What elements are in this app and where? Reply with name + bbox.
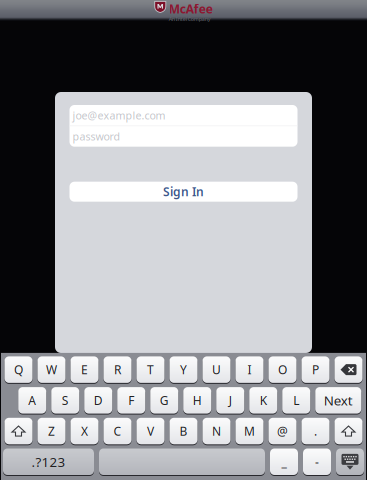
button[interactable]: . — [301, 418, 329, 444]
button[interactable]: T — [136, 356, 164, 383]
staticText: V — [147, 423, 154, 439]
button[interactable]: .?123 — [3, 448, 94, 475]
button[interactable]: Shift — [4, 418, 32, 444]
staticText: S — [62, 392, 69, 408]
staticText: An Intel Company — [169, 15, 211, 22]
button[interactable]: Z — [37, 418, 65, 444]
button[interactable]: I — [235, 356, 263, 383]
staticText: R — [114, 362, 121, 378]
button[interactable]: W — [37, 356, 65, 383]
button[interactable]: N — [202, 418, 230, 444]
staticText: L — [293, 392, 299, 408]
button[interactable]: X — [70, 418, 98, 444]
staticText: N — [212, 423, 221, 439]
button[interactable]: K — [249, 387, 277, 414]
button[interactable]: V — [136, 418, 164, 444]
button[interactable]: Q — [4, 356, 32, 383]
button[interactable]: L — [282, 387, 310, 414]
staticText: K — [260, 392, 267, 408]
button[interactable]: - — [303, 448, 331, 475]
button[interactable]: J — [216, 387, 244, 414]
button[interactable]: C — [103, 418, 131, 444]
staticText: Next — [324, 391, 353, 409]
button[interactable]: S — [51, 387, 79, 414]
button[interactable] — [99, 448, 265, 475]
button[interactable]: @ — [268, 418, 296, 444]
button[interactable]: R — [103, 356, 131, 383]
staticText: Y — [180, 362, 187, 378]
button[interactable]: A — [18, 387, 46, 414]
staticText: I — [247, 362, 251, 378]
staticText: A — [28, 392, 36, 408]
staticText: .?123 — [31, 453, 65, 471]
button[interactable]: _ — [270, 448, 298, 475]
button[interactable]: B — [169, 418, 197, 444]
button[interactable]: Sign In — [69, 182, 297, 202]
button[interactable]: Y — [169, 356, 197, 383]
button[interactable]: M — [235, 418, 263, 444]
button[interactable]: P — [301, 356, 329, 383]
button[interactable]: Delete — [334, 356, 362, 383]
staticText: C — [113, 423, 121, 439]
button[interactable]: E — [70, 356, 98, 383]
button[interactable]: Shift — [334, 418, 362, 444]
staticText: B — [179, 423, 187, 439]
staticText: Z — [48, 423, 55, 439]
button[interactable]: Dismiss Keyboard — [336, 448, 364, 475]
button[interactable]: G — [150, 387, 178, 414]
staticText: X — [81, 423, 88, 439]
staticText: - — [315, 454, 319, 470]
staticText: J — [229, 392, 232, 408]
staticText: G — [160, 392, 169, 408]
button[interactable]: F — [117, 387, 145, 414]
staticText: Sign In — [163, 184, 204, 200]
button[interactable]: D — [84, 387, 112, 414]
staticText: M — [244, 423, 255, 439]
button[interactable]: H — [183, 387, 211, 414]
staticText: W — [46, 362, 57, 378]
staticText: E — [81, 362, 88, 378]
staticText: Q — [14, 362, 23, 378]
button[interactable]: O — [268, 356, 296, 383]
staticText: T — [147, 362, 154, 378]
staticText: McAfee — [169, 1, 213, 17]
staticText: D — [94, 392, 103, 408]
staticText: . — [314, 423, 317, 439]
staticText: joe@example.com — [72, 108, 165, 122]
button[interactable]: U — [202, 356, 230, 383]
staticText: F — [128, 392, 134, 408]
staticText: @ — [277, 423, 288, 439]
staticText: P — [312, 362, 319, 378]
staticText: password — [72, 129, 120, 144]
staticText: _ — [281, 454, 286, 470]
staticText: U — [212, 362, 221, 378]
staticText: O — [278, 362, 287, 378]
button[interactable]: Next — [315, 387, 361, 414]
staticText: H — [193, 392, 202, 408]
